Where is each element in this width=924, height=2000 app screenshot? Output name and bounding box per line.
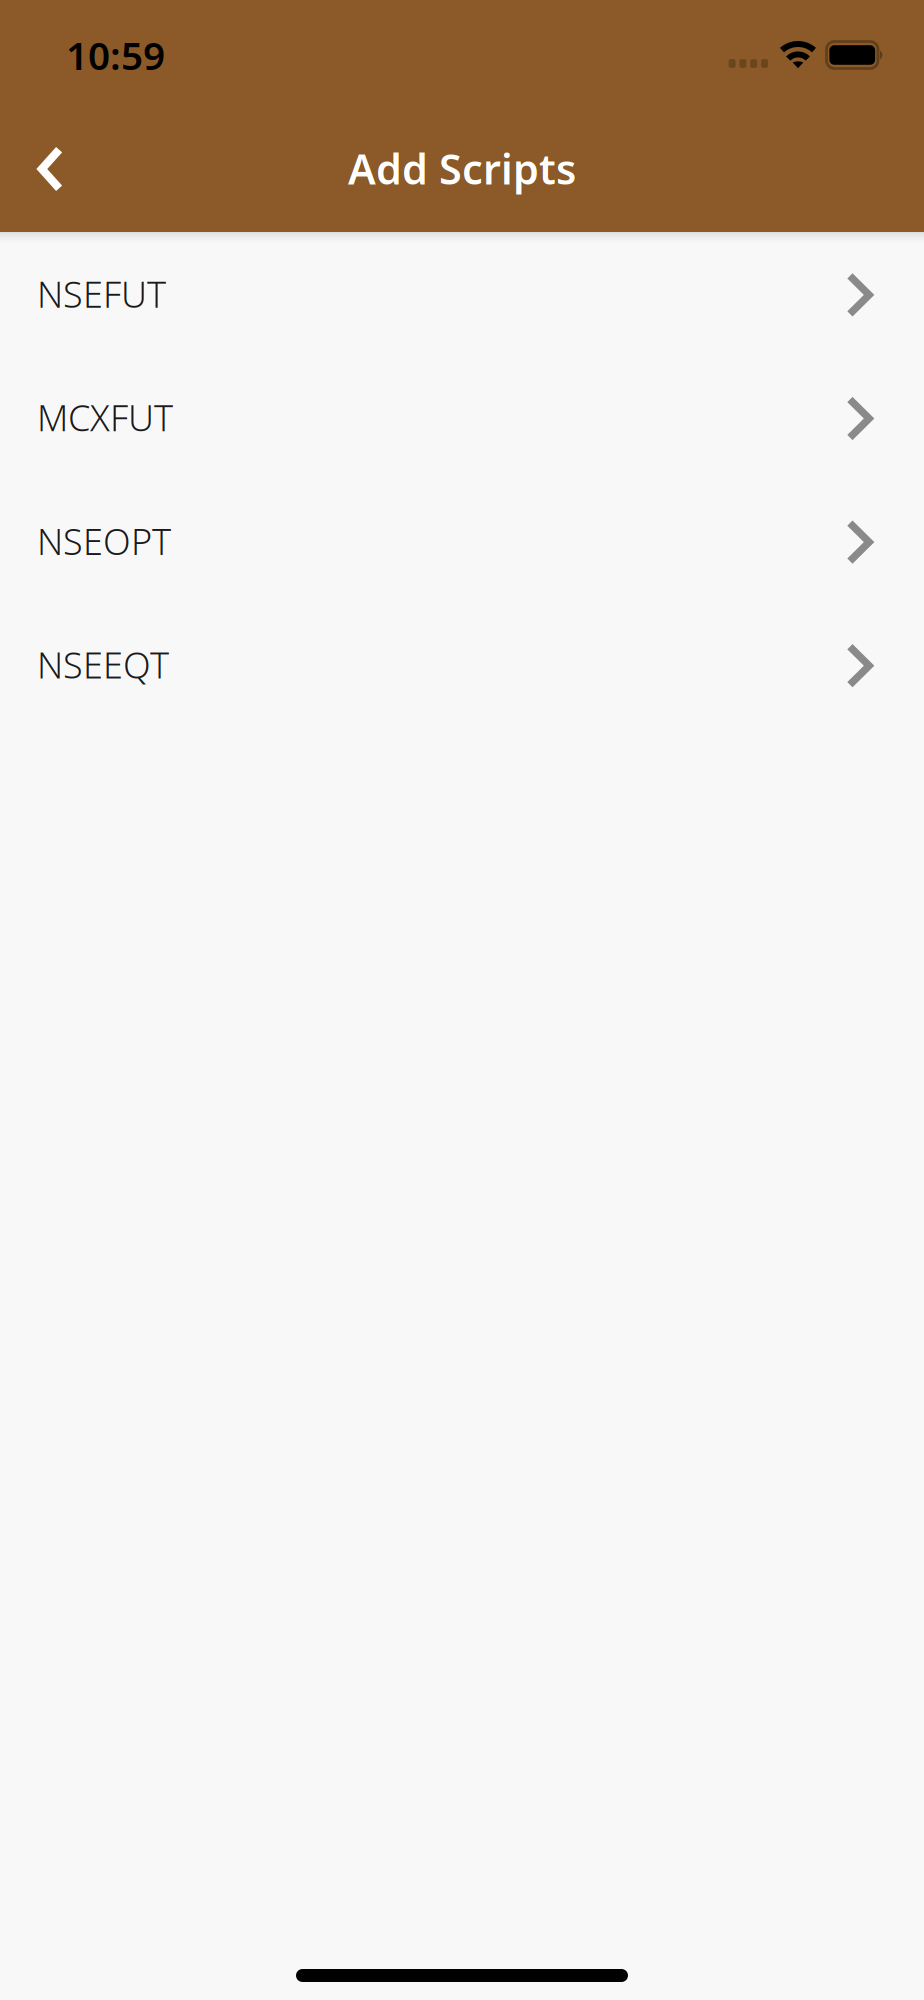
staticText: NSEFUT <box>37 270 166 318</box>
button[interactable]: NSEFUT <box>0 232 924 356</box>
staticText: MCXFUT <box>37 393 173 441</box>
staticText: 10:59 <box>66 29 165 81</box>
button[interactable]: Back <box>0 121 90 221</box>
staticText: NSEOPT <box>37 517 171 565</box>
button[interactable]: MCXFUT <box>0 356 924 479</box>
button[interactable]: NSEOPT <box>0 479 924 603</box>
button[interactable]: NSEEQT <box>0 603 924 726</box>
staticText: NSEEQT <box>37 641 169 688</box>
staticText: Add Scripts <box>348 141 576 196</box>
